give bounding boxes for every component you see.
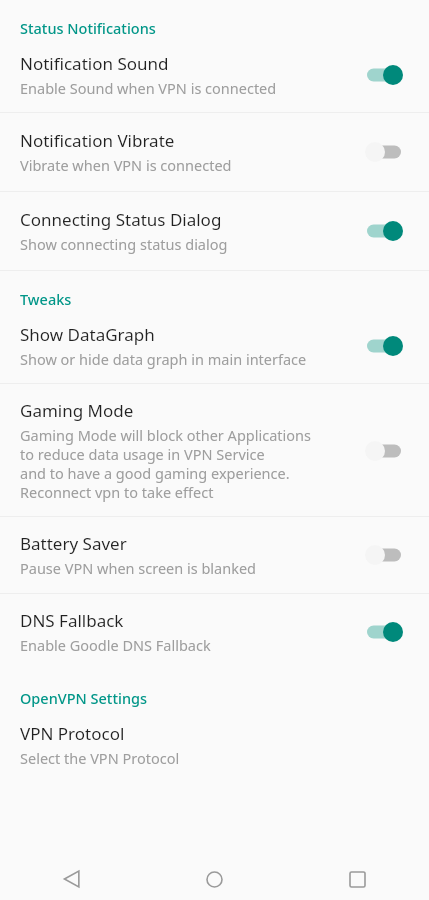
button[interactable]: Notification Sound — [0, 44, 429, 112]
other: Toggle off — [363, 137, 415, 167]
button[interactable]: Gaming Mode — [0, 384, 429, 516]
staticText: Vibrate when VPN is connected — [20, 155, 232, 175]
staticText: VPN Protocol — [20, 722, 125, 745]
staticText: Connecting Status Dialog — [20, 208, 222, 231]
other: Toggle on — [363, 617, 415, 647]
other: Toggle on — [363, 60, 415, 90]
staticText: Tweaks — [20, 289, 72, 309]
other: Toggle on — [363, 216, 415, 246]
other: Toggle off — [363, 436, 415, 466]
staticText: Show or hide data graph in main interfac… — [20, 349, 307, 369]
staticText: Notification Sound — [20, 52, 169, 75]
button[interactable]: Back — [0, 858, 143, 900]
button[interactable]: Home — [143, 858, 286, 900]
staticText: Show DataGraph — [20, 323, 155, 346]
button[interactable]: VPN Protocol — [0, 714, 429, 782]
staticText: Select the VPN Protocol — [20, 748, 180, 768]
staticText: Battery Saver — [20, 532, 127, 555]
staticText: Enable Sound when VPN is connected — [20, 78, 277, 98]
other: Toggle off — [363, 540, 415, 570]
button[interactable]: Connecting Status Dialog — [0, 192, 429, 270]
button[interactable]: DNS Fallback — [0, 594, 429, 670]
button[interactable]: Show DataGraph — [0, 315, 429, 383]
staticText: Enable Goodle DNS Fallback — [20, 635, 211, 655]
staticText: Status Notifications — [20, 18, 156, 38]
staticText: Notification Vibrate — [20, 129, 175, 152]
staticText: DNS Fallback — [20, 609, 124, 632]
staticText: OpenVPN Settings — [20, 688, 148, 708]
staticText: Show connecting status dialog — [20, 234, 228, 254]
staticText: Gaming Mode will block other Application… — [20, 425, 311, 502]
button[interactable]: Battery Saver — [0, 517, 429, 593]
button[interactable]: Notification Vibrate — [0, 113, 429, 191]
other: Toggle on — [363, 331, 415, 361]
button[interactable]: Recents — [286, 858, 429, 900]
staticText: Pause VPN when screen is blanked — [20, 558, 257, 578]
staticText: Gaming Mode — [20, 399, 134, 422]
